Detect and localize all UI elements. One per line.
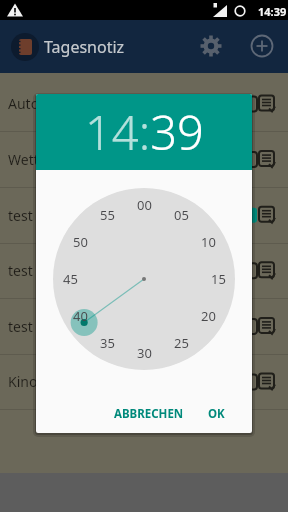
staticText: 10 [201, 233, 216, 251]
button[interactable]: Kino [0, 354, 288, 409]
staticText: Wetter [8, 150, 53, 169]
staticText: 35 [100, 334, 115, 352]
button[interactable]: ABBRECHEN [99, 400, 199, 428]
button[interactable]: Auto [0, 76, 288, 131]
staticText: 00 [137, 196, 152, 214]
staticText: Kino [8, 372, 38, 391]
staticText: 05 [174, 206, 189, 224]
staticText: 20 [201, 307, 216, 325]
button[interactable]: test [0, 188, 288, 243]
staticText: Auto [8, 94, 40, 113]
staticText: 55 [100, 206, 115, 224]
staticText: Tagesnotiz [44, 36, 125, 58]
button[interactable]: test [0, 243, 288, 298]
button[interactable]: OK [198, 400, 234, 428]
staticText: test [8, 317, 33, 336]
button[interactable]: test [0, 299, 288, 354]
staticText: 15 [211, 270, 226, 288]
staticText: 40 [73, 307, 88, 325]
staticText: 30 [137, 344, 152, 362]
staticText: OK [208, 406, 225, 422]
staticText: 50 [73, 233, 88, 251]
staticText: test [8, 261, 33, 280]
button[interactable] [11, 33, 39, 61]
button[interactable]: Wetter [0, 132, 288, 187]
staticText: 14:39 [85, 100, 204, 164]
staticText: test [8, 206, 33, 225]
staticText: 25 [174, 334, 189, 352]
button[interactable] [250, 34, 274, 58]
staticText: ABBRECHEN [114, 406, 184, 422]
button[interactable] [199, 34, 223, 58]
staticText: 14:39 [258, 4, 287, 18]
staticText: 45 [63, 270, 78, 288]
